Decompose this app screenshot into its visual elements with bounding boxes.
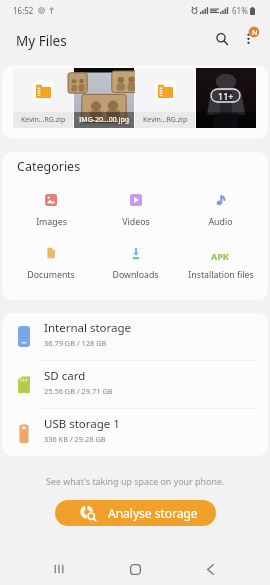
staticText: Kevin...RG.zip bbox=[143, 115, 188, 125]
button[interactable]: Downloads bbox=[93, 247, 178, 281]
staticText: 336 KB / 29.28 GB bbox=[44, 434, 106, 444]
staticText: Downloads bbox=[112, 269, 159, 281]
button[interactable]: IMG-20...00.jpg bbox=[74, 68, 134, 128]
staticText: IMG-20...00.jpg bbox=[79, 115, 130, 125]
button[interactable]: Search bbox=[210, 27, 234, 51]
button[interactable]: SD card bbox=[2, 361, 268, 408]
staticText: Internal storage bbox=[44, 320, 132, 336]
button[interactable]: USB storage 1 bbox=[2, 409, 268, 456]
button[interactable]: 11+ bbox=[196, 68, 256, 128]
staticText: Kevin...RG.zip bbox=[21, 115, 66, 125]
staticText: 11+ bbox=[218, 90, 234, 102]
button[interactable]: Videos bbox=[93, 194, 178, 228]
staticText: Installation files bbox=[188, 269, 254, 281]
button[interactable]: Audio bbox=[178, 194, 263, 228]
button[interactable]: Home bbox=[118, 552, 152, 585]
button[interactable]: Documents bbox=[9, 247, 93, 281]
staticText: Videos bbox=[122, 216, 150, 228]
staticText: My Files bbox=[16, 32, 67, 50]
staticText: 16:52 bbox=[13, 5, 34, 16]
button[interactable]: Installation files bbox=[178, 247, 263, 281]
button[interactable]: Recents bbox=[42, 552, 76, 585]
staticText: Categories bbox=[17, 158, 81, 175]
staticText: Images bbox=[36, 216, 67, 228]
button[interactable]: Kevin...RG.zip bbox=[13, 68, 73, 128]
staticText: See what's taking up space on your phone… bbox=[46, 475, 225, 487]
staticText: 61% bbox=[232, 5, 248, 16]
button[interactable]: Internal storage bbox=[2, 313, 268, 360]
button[interactable]: Analyse storage bbox=[55, 500, 216, 526]
staticText: SD card bbox=[44, 368, 86, 384]
staticText: USB storage 1 bbox=[44, 416, 120, 432]
staticText: 36.79 GB / 128 GB bbox=[44, 338, 107, 348]
staticText: Audio bbox=[208, 216, 233, 228]
staticText: APK bbox=[211, 250, 229, 262]
staticText: N bbox=[252, 28, 258, 38]
staticText: Documents bbox=[27, 269, 75, 281]
button[interactable]: Kevin...RG.zip bbox=[135, 68, 195, 128]
button[interactable]: Images bbox=[9, 194, 93, 228]
button[interactable]: More options bbox=[238, 24, 264, 50]
staticText: Analyse storage bbox=[108, 505, 198, 521]
staticText: 25.56 GB / 29.71 GB bbox=[44, 386, 113, 396]
button[interactable]: Back bbox=[193, 552, 227, 585]
